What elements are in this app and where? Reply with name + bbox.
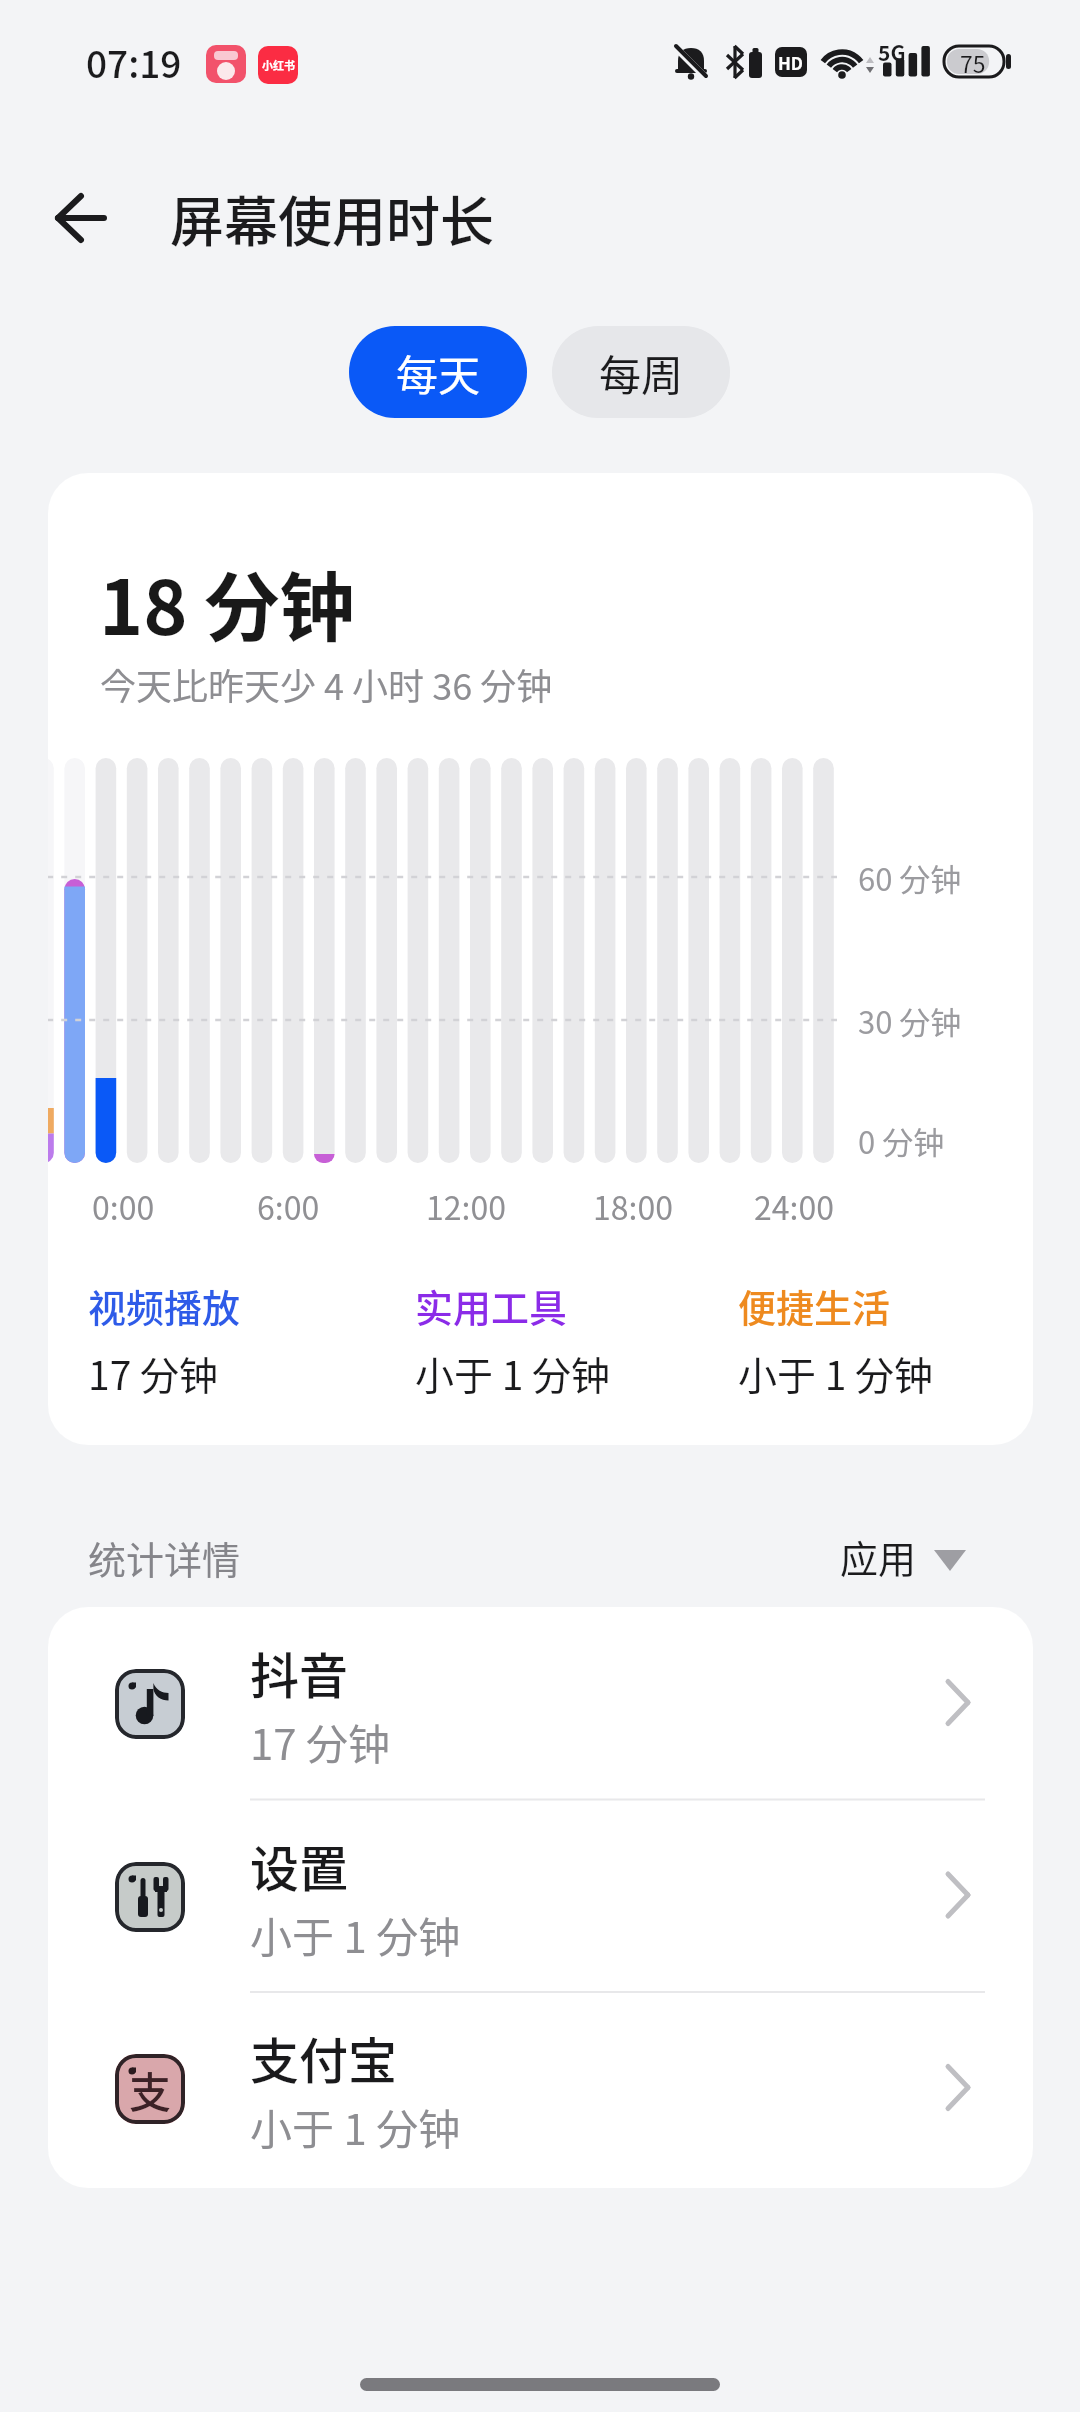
staticText: 60 分钟 (858, 855, 962, 900)
staticText: 统计详情 (88, 1530, 241, 1585)
staticText: 17 分钟 (250, 1711, 391, 1772)
staticText: 小于 1 分钟 (250, 2096, 461, 2157)
staticText: 视频播放 (88, 1278, 241, 1333)
staticText: 0:00 (92, 1183, 155, 1229)
staticText: 12:00 (426, 1183, 506, 1229)
staticText: 18 分钟 (99, 548, 355, 657)
staticText: 每周 (599, 342, 684, 403)
staticText: 小于 1 分钟 (415, 1345, 611, 1401)
staticText: 小于 1 分钟 (738, 1345, 934, 1401)
staticText: 5G (878, 37, 906, 67)
staticText: 小红书 (262, 57, 295, 73)
staticText: 支 (129, 2059, 172, 2120)
staticText: 今天比昨天少 4 小时 36 分钟 (100, 658, 553, 710)
button[interactable] (820, 1520, 990, 1590)
staticText: HD (778, 50, 804, 75)
button[interactable]: 支 (48, 1992, 1033, 2185)
staticText: 18:00 (593, 1183, 673, 1229)
staticText: 75 (960, 46, 986, 79)
button[interactable]: 每天 (349, 326, 527, 418)
staticText: 每天 (396, 342, 481, 403)
staticText: 6:00 (257, 1183, 320, 1229)
staticText: 设置 (250, 1830, 349, 1901)
staticText: 实用工具 (415, 1278, 568, 1333)
button[interactable] (40, 190, 120, 246)
staticText: 抖音 (250, 1637, 349, 1708)
staticText: 30 分钟 (858, 998, 962, 1043)
button[interactable] (48, 1800, 1033, 1993)
staticText: 小于 1 分钟 (250, 1904, 461, 1965)
staticText: 应用 (840, 1529, 917, 1584)
staticText: 07:19 (86, 35, 182, 89)
staticText: 便捷生活 (738, 1278, 891, 1333)
button[interactable] (48, 1607, 1033, 1800)
button[interactable]: 每周 (552, 326, 730, 418)
staticText: 17 分钟 (88, 1345, 219, 1401)
staticText: 0 分钟 (858, 1118, 945, 1163)
staticText: 支付宝 (250, 2022, 398, 2093)
staticText: 屏幕使用时长 (170, 179, 494, 257)
staticText: 24:00 (754, 1183, 834, 1229)
